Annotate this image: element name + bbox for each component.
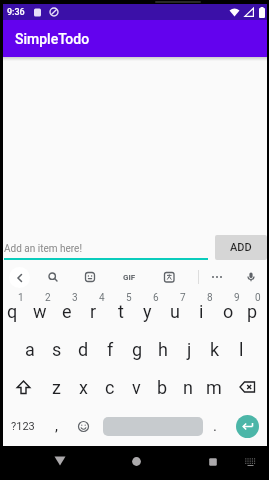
- button[interactable]: [71, 262, 109, 292]
- staticText: l: [239, 339, 244, 360]
- button[interactable]: .: [203, 406, 227, 446]
- button[interactable]: y: [134, 292, 161, 331]
- button[interactable]: a: [16, 331, 43, 368]
- staticText: 0: [255, 292, 261, 304]
- button[interactable]: z: [43, 368, 70, 406]
- staticText: d: [78, 339, 89, 360]
- button[interactable]: [227, 406, 267, 446]
- button[interactable]: r: [80, 292, 107, 331]
- button[interactable]: l: [228, 331, 254, 368]
- button[interactable]: u: [161, 292, 188, 331]
- staticText: 8: [207, 292, 213, 304]
- staticText: g: [132, 339, 143, 360]
- staticText: t: [118, 301, 124, 322]
- staticText: i: [199, 301, 204, 322]
- staticText: ADD: [230, 241, 252, 254]
- button[interactable]: v: [123, 368, 149, 406]
- button[interactable]: m: [201, 368, 227, 406]
- button[interactable]: i: [188, 292, 215, 331]
- staticText: n: [183, 377, 193, 398]
- staticText: 1: [18, 292, 24, 304]
- button[interactable]: b: [149, 368, 175, 406]
- staticText: GIF: [123, 273, 136, 282]
- staticText: w: [33, 301, 47, 322]
- button[interactable]: [123, 448, 150, 475]
- button[interactable]: ,: [43, 406, 70, 446]
- staticText: h: [158, 339, 168, 360]
- button[interactable]: [103, 406, 203, 446]
- staticText: j: [187, 339, 192, 360]
- button[interactable]: o: [215, 292, 242, 331]
- button[interactable]: c: [97, 368, 123, 406]
- staticText: m: [206, 377, 222, 398]
- button[interactable]: s: [43, 331, 70, 368]
- staticText: SimpleTodo: [15, 31, 90, 47]
- staticText: 7: [180, 292, 186, 304]
- staticText: 9:36: [7, 7, 25, 18]
- button[interactable]: g: [124, 331, 150, 368]
- staticText: ,: [55, 417, 58, 435]
- staticText: p: [247, 301, 258, 322]
- button[interactable]: h: [150, 331, 176, 368]
- button[interactable]: p: [242, 292, 263, 331]
- staticText: 5: [126, 292, 132, 304]
- button[interactable]: ADD: [215, 235, 267, 260]
- staticText: c: [105, 377, 115, 398]
- button[interactable]: [47, 448, 73, 474]
- staticText: q: [7, 301, 18, 322]
- button[interactable]: GIF: [109, 262, 149, 292]
- staticText: r: [90, 301, 97, 322]
- button[interactable]: [238, 450, 262, 474]
- staticText: s: [52, 339, 62, 360]
- button[interactable]: w: [26, 292, 53, 331]
- button[interactable]: n: [175, 368, 201, 406]
- button[interactable]: f: [97, 331, 124, 368]
- button[interactable]: [235, 262, 267, 292]
- staticText: k: [210, 339, 220, 360]
- staticText: ?123: [11, 420, 35, 433]
- button[interactable]: [149, 262, 189, 292]
- staticText: 4: [99, 292, 105, 304]
- button[interactable]: [227, 368, 267, 406]
- staticText: z: [52, 377, 61, 398]
- button[interactable]: [3, 262, 35, 292]
- staticText: o: [223, 301, 234, 322]
- staticText: 9: [234, 292, 240, 304]
- staticText: 2: [45, 292, 51, 304]
- button[interactable]: x: [70, 368, 97, 406]
- staticText: x: [79, 377, 88, 398]
- staticText: u: [170, 301, 180, 322]
- button[interactable]: t: [107, 292, 134, 331]
- staticText: 3: [72, 292, 78, 304]
- button[interactable]: [35, 262, 71, 292]
- staticText: b: [157, 377, 168, 398]
- staticText: v: [132, 377, 141, 398]
- button[interactable]: j: [176, 331, 202, 368]
- button[interactable]: ?123: [3, 406, 43, 446]
- button[interactable]: d: [70, 331, 97, 368]
- staticText: e: [62, 301, 72, 322]
- button[interactable]: q: [0, 292, 26, 331]
- staticText: Add an item here!: [4, 243, 82, 255]
- staticText: 6: [153, 292, 159, 304]
- staticText: y: [143, 301, 152, 322]
- button[interactable]: k: [202, 331, 228, 368]
- button[interactable]: [199, 448, 226, 475]
- staticText: f: [107, 339, 114, 360]
- button[interactable]: [3, 368, 43, 406]
- button[interactable]: e: [53, 292, 80, 331]
- staticText: a: [25, 339, 35, 360]
- staticText: .: [213, 417, 217, 435]
- button[interactable]: [199, 262, 235, 292]
- button[interactable]: [70, 406, 97, 446]
